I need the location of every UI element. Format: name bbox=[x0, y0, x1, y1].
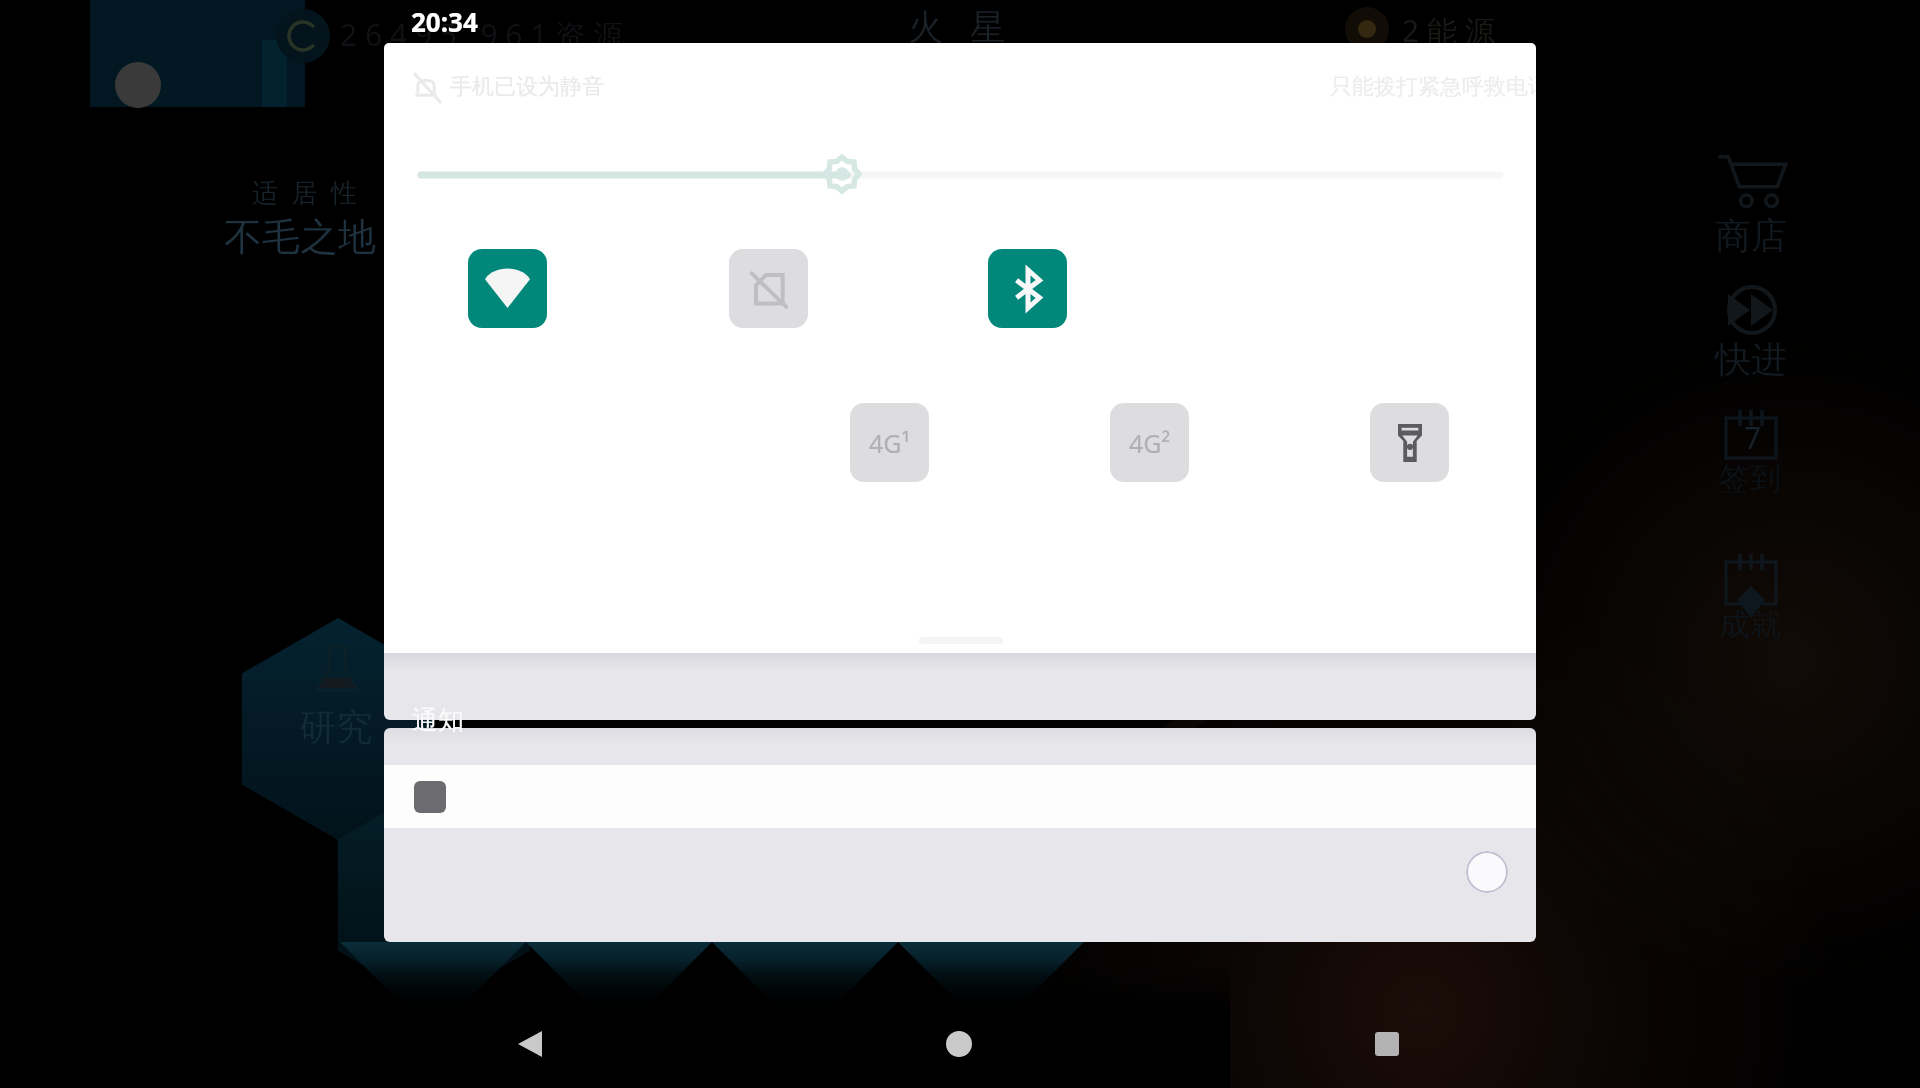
button[interactable]: Home bbox=[935, 1020, 983, 1068]
staticText: 研究 bbox=[299, 704, 373, 751]
button[interactable]: Clear all notifications bbox=[1466, 851, 1508, 893]
button[interactable]: Back bbox=[506, 1020, 554, 1068]
button[interactable]: Daily check in bbox=[1692, 404, 1814, 504]
staticText: 适 居 性 bbox=[252, 174, 358, 210]
button[interactable]: Bluetooth bbox=[988, 249, 1067, 328]
staticText: 4G¹ bbox=[869, 426, 911, 460]
staticText: 快进 bbox=[1715, 337, 1787, 382]
staticText: 20:34 bbox=[411, 4, 478, 39]
button[interactable] bbox=[384, 765, 1536, 828]
staticText: 7 bbox=[1744, 417, 1762, 458]
button[interactable]: Screen brightness bbox=[414, 153, 1507, 195]
staticText: 手机已设为静音 bbox=[450, 73, 604, 101]
staticText: 签到 bbox=[1719, 459, 1781, 498]
staticText: 4G² bbox=[1129, 426, 1171, 460]
staticText: 不毛之地 bbox=[224, 213, 376, 261]
staticText: 成就 bbox=[1719, 605, 1781, 644]
button[interactable]: Flashlight bbox=[1370, 403, 1449, 482]
staticText: 2 6 4 9 5 9 6 1 资 源 bbox=[340, 14, 624, 55]
button[interactable]: 4G SIM 1 bbox=[850, 403, 929, 482]
button[interactable]: Fast forward bbox=[1692, 280, 1814, 386]
button[interactable]: Shop bbox=[1692, 150, 1814, 258]
button[interactable]: Recent apps bbox=[1363, 1020, 1411, 1068]
button[interactable]: Wi-Fi bbox=[468, 249, 547, 328]
staticText: 火 星 bbox=[908, 2, 1006, 50]
staticText: 2 能 源 bbox=[1402, 10, 1495, 51]
staticText: 只能拨打紧急呼救电话 bbox=[1330, 73, 1536, 101]
button[interactable]: 4G SIM 2 bbox=[1110, 403, 1189, 482]
button[interactable]: Achievements bbox=[1692, 548, 1814, 648]
staticText: 通知 bbox=[412, 704, 464, 737]
button[interactable]: Mobile data off bbox=[729, 249, 808, 328]
staticText: 商店 bbox=[1715, 213, 1787, 258]
